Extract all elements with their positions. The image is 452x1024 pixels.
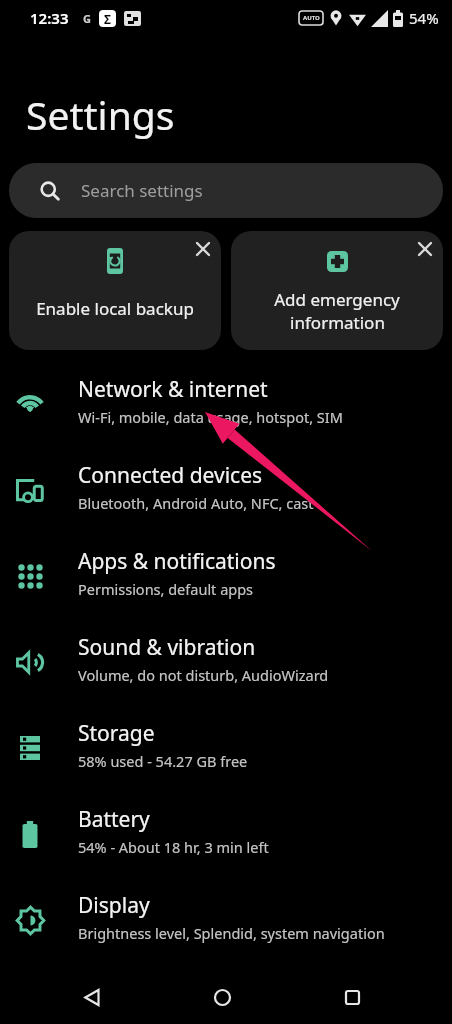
staticText: Sound & vibration xyxy=(78,633,256,662)
staticText: Settings xyxy=(26,88,175,141)
staticText: Apps & notifications xyxy=(78,547,276,576)
staticText: information xyxy=(290,311,385,334)
staticText: Display xyxy=(78,891,150,920)
staticText: Brightness level, Splendid, system navig… xyxy=(78,923,385,943)
staticText: Enable local backup xyxy=(36,297,194,320)
staticText: Σ xyxy=(104,11,111,27)
staticText: Storage xyxy=(78,719,155,748)
staticText: AUTO xyxy=(303,14,320,22)
button[interactable]: Storage xyxy=(0,705,452,791)
staticText: G xyxy=(83,11,91,26)
button[interactable]: Connected devices xyxy=(0,447,452,533)
button[interactable] xyxy=(68,973,116,1021)
button[interactable]: Display xyxy=(0,877,452,963)
staticText: Battery xyxy=(78,805,150,834)
button[interactable]: Apps & notifications xyxy=(0,533,452,619)
button[interactable]: Search settings xyxy=(9,163,443,218)
staticText: Volume, do not disturb, AudioWizard xyxy=(78,665,329,685)
staticText: 58% used - 54.27 GB free xyxy=(78,751,248,771)
button[interactable]: Sound & vibration xyxy=(0,619,452,705)
staticText: Add emergency xyxy=(274,288,400,311)
button[interactable] xyxy=(198,973,246,1021)
staticText: 54% xyxy=(409,8,439,28)
button[interactable]: Battery xyxy=(0,791,452,877)
button[interactable] xyxy=(328,973,376,1021)
staticText: 54% - About 18 hr, 3 min left xyxy=(78,837,269,857)
button[interactable]: Add emergency xyxy=(231,231,443,350)
button[interactable]: Network & internet xyxy=(0,361,452,447)
staticText: Wi-Fi, mobile, data usage, hotspot, SIM xyxy=(78,407,343,427)
staticText: Search settings xyxy=(81,179,203,202)
staticText: Network & internet xyxy=(78,375,268,404)
button[interactable]: Enable local backup xyxy=(9,231,221,350)
staticText: Bluetooth, Android Auto, NFC, cast xyxy=(78,493,314,513)
staticText: Permissions, default apps xyxy=(78,579,254,599)
staticText: Connected devices xyxy=(78,461,263,490)
staticText: 12:33 xyxy=(30,8,69,28)
